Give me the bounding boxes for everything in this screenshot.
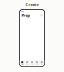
staticText: Tab [21,63,24,65]
staticText: Prep [21,13,30,18]
staticText: Tab [30,63,33,65]
staticText: Create [25,2,38,7]
staticText: Tab [35,63,38,65]
staticText: Tab [26,63,29,65]
staticText: 9:41 [21,10,24,12]
staticText: Tab [40,63,43,65]
